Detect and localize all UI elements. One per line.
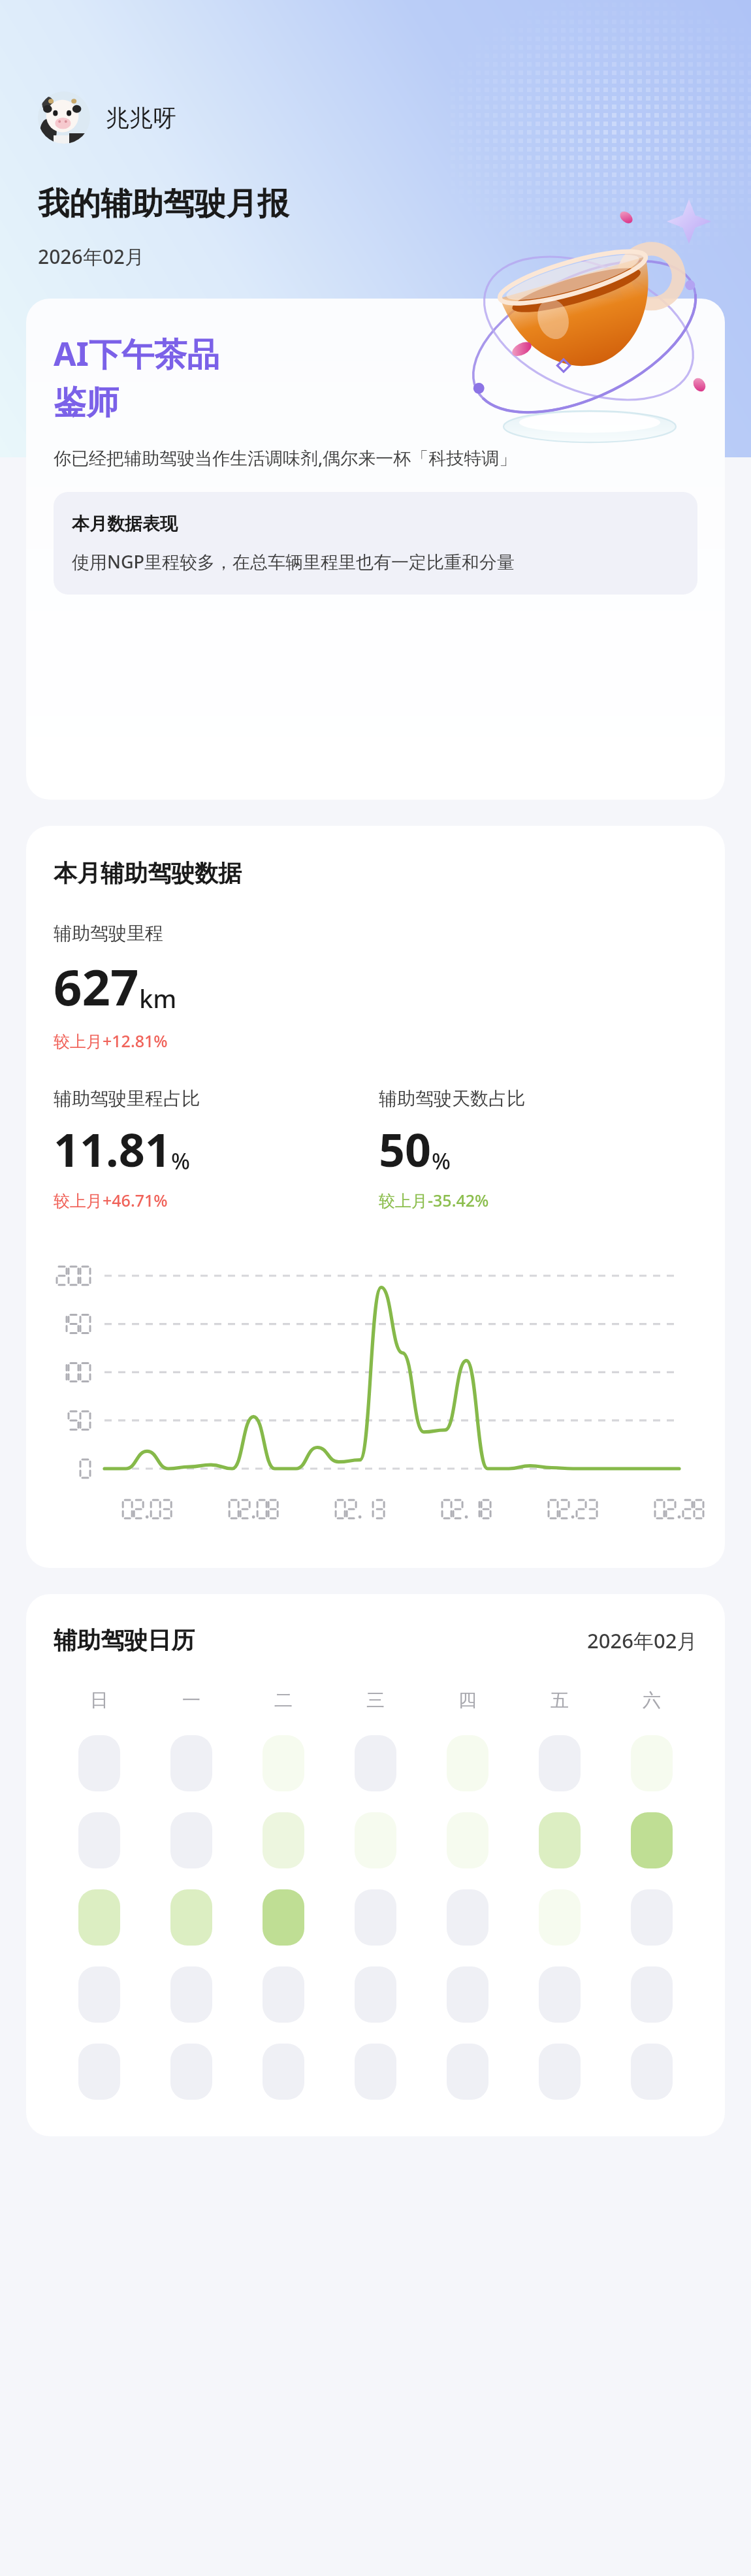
button[interactable]: [355, 2044, 396, 2100]
button[interactable]: [263, 1966, 304, 2023]
staticText: 我的辅助驾驶月报: [38, 184, 289, 223]
button[interactable]: AI下午茶品: [26, 299, 725, 800]
button[interactable]: 辅助驾驶日历: [26, 1594, 725, 2136]
staticText: 使用NGP里程较多，在总车辆里程里也有一定比重和分量: [72, 549, 515, 574]
staticText: 四: [458, 1689, 477, 1712]
button[interactable]: [355, 1735, 396, 1791]
button[interactable]: [631, 1889, 673, 1946]
button[interactable]: [539, 1735, 581, 1791]
staticText: 本月辅助驾驶数据: [54, 858, 242, 888]
staticText: 五: [551, 1689, 569, 1712]
staticText: 一: [182, 1689, 200, 1712]
button[interactable]: [631, 2044, 673, 2100]
staticText: 三: [366, 1689, 385, 1712]
button[interactable]: [263, 2044, 304, 2100]
staticText: 日: [90, 1689, 108, 1712]
button[interactable]: [539, 2044, 581, 2100]
staticText: 二: [274, 1689, 293, 1712]
button[interactable]: 本月辅助驾驶数据: [26, 826, 725, 1568]
staticText: 较上月-35.42%: [379, 1189, 489, 1211]
staticText: 50: [379, 1118, 432, 1180]
staticText: 辅助驾驶天数占比: [379, 1087, 525, 1110]
staticText: AI下午茶品: [54, 331, 220, 376]
staticText: 627: [54, 953, 139, 1020]
staticText: %: [432, 1146, 451, 1176]
button[interactable]: [631, 1812, 673, 1868]
button[interactable]: [170, 1735, 212, 1791]
button[interactable]: [355, 1966, 396, 2023]
button[interactable]: [355, 1889, 396, 1946]
button[interactable]: [447, 1966, 488, 2023]
staticText: 较上月+12.81%: [54, 1030, 168, 1052]
button[interactable]: [447, 1735, 488, 1791]
staticText: 较上月+46.71%: [54, 1189, 168, 1211]
button[interactable]: [263, 1812, 304, 1868]
button[interactable]: [447, 1889, 488, 1946]
button[interactable]: [539, 1966, 581, 2023]
button[interactable]: [355, 1812, 396, 1868]
staticText: 辅助驾驶里程占比: [54, 1087, 200, 1110]
staticText: 2026年02月: [38, 243, 144, 270]
button[interactable]: [78, 1812, 120, 1868]
button[interactable]: 辅助驾驶里程占比: [54, 1087, 379, 1211]
button[interactable]: [78, 1735, 120, 1791]
button[interactable]: [170, 1812, 212, 1868]
button[interactable]: [447, 2044, 488, 2100]
staticText: 辅助驾驶日历: [54, 1625, 195, 1655]
staticText: %: [171, 1146, 190, 1176]
staticText: 2026年02月: [587, 1627, 697, 1654]
button[interactable]: [170, 1966, 212, 2023]
button[interactable]: 辅助驾驶天数占比: [379, 1087, 704, 1211]
button[interactable]: [78, 2044, 120, 2100]
staticText: 鉴师: [54, 382, 119, 423]
staticText: 你已经把辅助驾驶当作生活调味剂,偶尔来一杯「科技特调」: [54, 446, 517, 470]
button[interactable]: [170, 1889, 212, 1946]
button[interactable]: [539, 1889, 581, 1946]
button[interactable]: [78, 1889, 120, 1946]
staticText: 11.81: [54, 1118, 171, 1180]
staticText: 本月数据表现: [72, 513, 178, 535]
button[interactable]: [170, 2044, 212, 2100]
staticText: 兆兆呀: [106, 103, 176, 133]
button[interactable]: [447, 1812, 488, 1868]
button[interactable]: [263, 1889, 304, 1946]
button[interactable]: [78, 1966, 120, 2023]
staticText: 辅助驾驶里程: [54, 922, 163, 945]
button[interactable]: [631, 1966, 673, 2023]
button[interactable]: [631, 1735, 673, 1791]
button[interactable]: [263, 1735, 304, 1791]
staticText: 六: [643, 1689, 661, 1712]
button[interactable]: 兆兆呀: [38, 91, 176, 144]
staticText: km: [139, 981, 177, 1015]
button[interactable]: [539, 1812, 581, 1868]
